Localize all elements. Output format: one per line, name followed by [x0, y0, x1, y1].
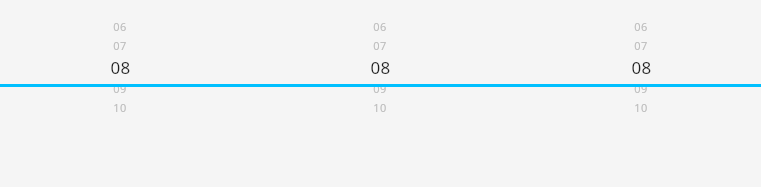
- button[interactable]: Select value, current 08: [350, 17, 410, 117]
- staticText: 08: [631, 56, 652, 79]
- staticText: 10: [373, 100, 387, 115]
- staticText: 08: [110, 56, 131, 79]
- button[interactable]: Select value, current 08: [90, 17, 150, 117]
- button[interactable]: Select value, current 08: [611, 17, 671, 117]
- staticText: 07: [634, 38, 648, 53]
- staticText: 07: [373, 38, 387, 53]
- staticText: 07: [113, 38, 127, 53]
- staticText: 08: [370, 56, 391, 79]
- staticText: 06: [634, 19, 648, 34]
- staticText: 06: [113, 19, 127, 34]
- staticText: 09: [113, 81, 127, 96]
- staticText: 10: [113, 100, 127, 115]
- staticText: 09: [634, 81, 648, 96]
- staticText: 10: [634, 100, 648, 115]
- staticText: 09: [373, 81, 387, 96]
- staticText: 06: [373, 19, 387, 34]
